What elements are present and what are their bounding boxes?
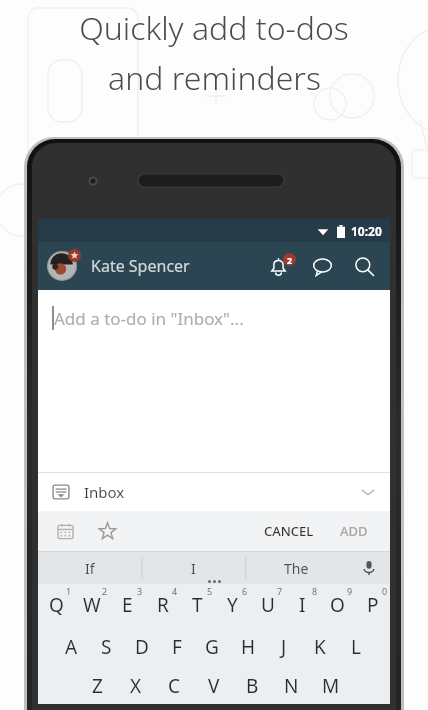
staticText: N <box>284 673 299 699</box>
button[interactable]: Y <box>215 584 250 626</box>
staticText: V <box>208 673 220 699</box>
staticText: K <box>314 634 326 660</box>
staticText: and reminders <box>108 56 321 100</box>
button[interactable]: P <box>355 584 390 626</box>
button[interactable]: M <box>311 668 350 704</box>
staticText: Z <box>92 673 103 699</box>
staticText: L <box>351 634 361 660</box>
button[interactable]: L <box>338 626 374 668</box>
staticText: P <box>367 592 379 618</box>
staticText: 5 <box>207 585 213 597</box>
staticText: I <box>299 592 306 618</box>
staticText: T <box>192 592 203 618</box>
staticText: 9 <box>347 585 353 597</box>
staticText: O <box>330 592 345 618</box>
button[interactable]: J <box>266 626 302 668</box>
staticText: Kate Spencer <box>91 255 190 277</box>
button[interactable]: Z <box>78 668 116 704</box>
staticText: D <box>135 634 149 660</box>
staticText: R <box>157 592 169 618</box>
staticText: 7 <box>277 585 283 597</box>
button[interactable]: Notifications <box>263 249 297 283</box>
staticText: G <box>205 634 219 660</box>
button[interactable]: Search <box>347 249 381 283</box>
button[interactable]: K <box>302 626 338 668</box>
button[interactable]: F <box>159 626 194 668</box>
staticText: B <box>246 673 259 699</box>
staticText: 8 <box>312 585 318 597</box>
button[interactable]: I <box>142 552 245 584</box>
button[interactable]: G <box>194 626 230 668</box>
button[interactable]: Voice input <box>348 552 390 584</box>
button[interactable]: Star <box>92 516 122 546</box>
staticText: 0 <box>382 585 388 597</box>
staticText: C <box>168 673 181 699</box>
staticText: Add a to-do in "Inbox"... <box>54 307 244 330</box>
staticText: E <box>122 592 133 618</box>
staticText: X <box>130 673 142 699</box>
button[interactable]: O <box>320 584 355 626</box>
button[interactable]: S <box>89 626 124 668</box>
button[interactable]: CANCEL <box>254 516 324 546</box>
button[interactable]: D <box>124 626 159 668</box>
staticText: Quickly add to-dos <box>79 6 349 50</box>
staticText: 1 <box>66 585 72 597</box>
staticText: Y <box>227 592 238 618</box>
button[interactable]: H <box>230 626 266 668</box>
staticText: I <box>191 559 196 578</box>
button[interactable]: Profile <box>47 249 81 283</box>
staticText: CANCEL <box>264 522 314 540</box>
staticText: Inbox <box>84 482 125 502</box>
staticText: 2 <box>287 254 293 266</box>
staticText: A <box>65 634 78 660</box>
button[interactable]: If <box>38 552 142 584</box>
button[interactable]: R <box>145 584 180 626</box>
button[interactable]: ADD <box>330 516 378 546</box>
button[interactable]: E <box>110 584 145 626</box>
staticText: F <box>172 634 182 660</box>
button[interactable]: B <box>233 668 272 704</box>
staticText: 10:20 <box>351 223 382 239</box>
staticText: 6 <box>242 585 248 597</box>
staticText: M <box>322 673 340 699</box>
staticText: Q <box>49 592 64 618</box>
staticText: 4 <box>172 585 178 597</box>
staticText: 3 <box>137 585 143 597</box>
staticText: S <box>101 634 112 660</box>
button[interactable]: Q <box>38 584 74 626</box>
button[interactable]: Inbox <box>38 473 390 511</box>
button[interactable]: T <box>180 584 215 626</box>
button[interactable]: X <box>116 668 155 704</box>
staticText: U <box>261 592 275 618</box>
staticText: The <box>284 559 309 578</box>
button[interactable]: U <box>250 584 285 626</box>
staticText: ADD <box>340 522 368 540</box>
button[interactable]: W <box>74 584 110 626</box>
button[interactable]: Set date <box>50 516 80 546</box>
staticText: If <box>85 559 95 578</box>
staticText: 2 <box>102 585 108 597</box>
button[interactable]: C <box>155 668 194 704</box>
button[interactable]: V <box>194 668 233 704</box>
button[interactable]: Messages <box>305 249 339 283</box>
button[interactable]: I <box>285 584 320 626</box>
button[interactable]: The <box>245 552 348 584</box>
button[interactable]: A <box>54 626 89 668</box>
staticText: J <box>281 634 287 660</box>
button[interactable]: N <box>272 668 311 704</box>
staticText: W <box>83 592 101 618</box>
staticText: H <box>241 634 256 660</box>
